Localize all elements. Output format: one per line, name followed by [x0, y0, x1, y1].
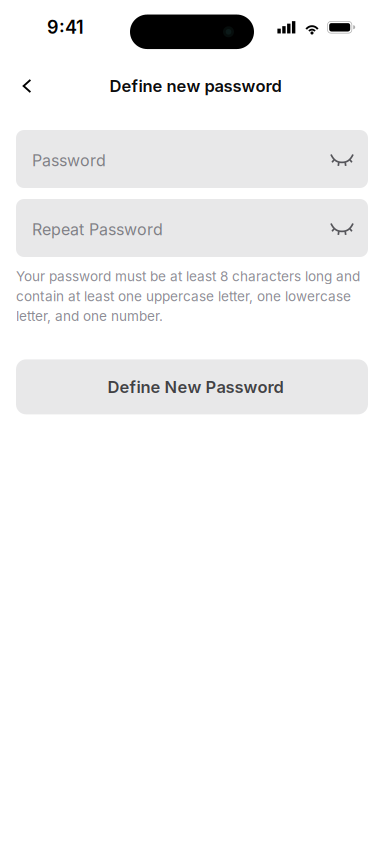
staticText: Your password must be at least 8 charact…: [16, 268, 360, 324]
staticText: Define new password: [109, 76, 281, 96]
staticText: Define New Password: [107, 377, 283, 397]
staticText: 9:41: [47, 16, 84, 38]
staticText: Repeat Password: [32, 220, 163, 239]
button[interactable]: Show Repeat Password: [323, 206, 361, 250]
button[interactable]: Password: [16, 130, 368, 188]
button[interactable]: Define New Password: [16, 359, 368, 414]
button[interactable]: Show Password: [323, 137, 361, 181]
button[interactable]: Back: [12, 63, 42, 107]
button[interactable]: Repeat Password: [16, 199, 368, 257]
staticText: Password: [32, 151, 106, 170]
